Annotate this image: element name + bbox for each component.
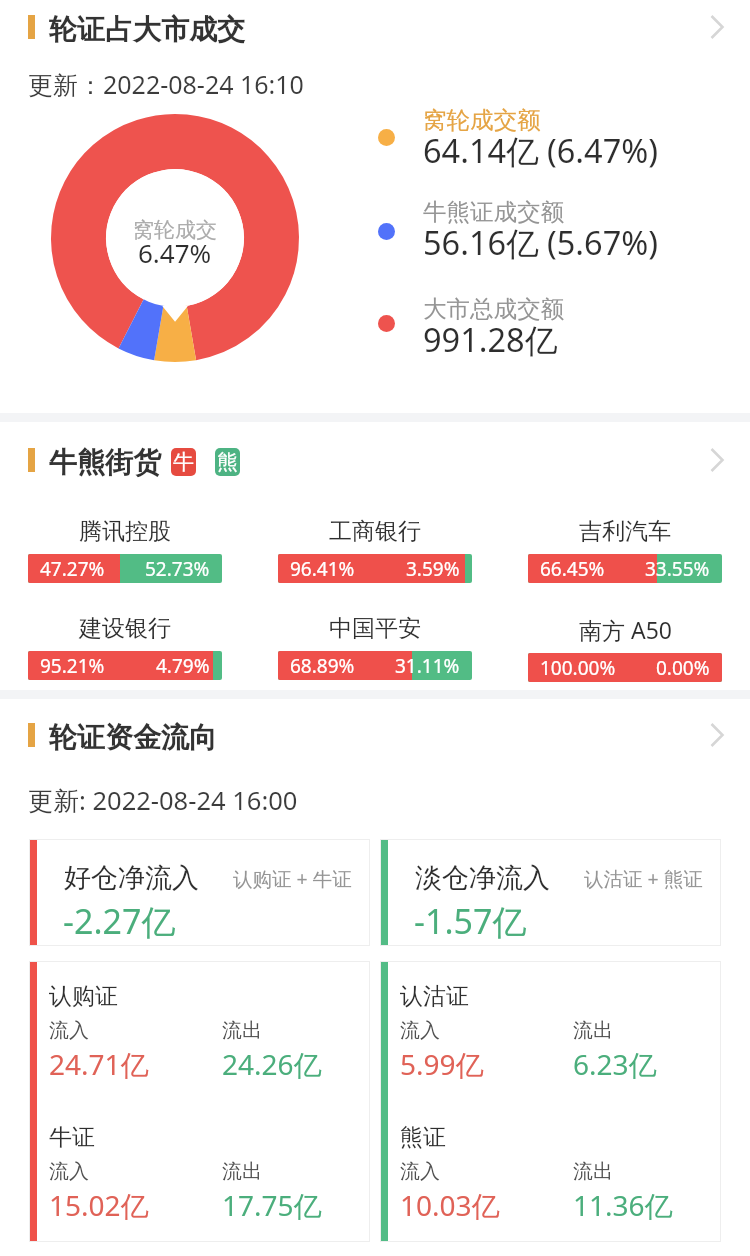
staticText: 窝轮成交 [133,217,217,243]
staticText: 认购证 [49,982,118,1011]
button[interactable]: 牛 [171,448,196,476]
staticText: 熊 [217,449,238,475]
button[interactable]: 查看更多 [693,3,741,51]
staticText: 流出 [573,1159,613,1184]
staticText: 认购证 + 牛证 [233,865,352,892]
staticText: 流出 [573,1018,613,1043]
staticText: 牛熊街货 [49,445,161,480]
button[interactable]: 认沽证 [380,961,721,1242]
staticText: 10.03亿 [400,1186,500,1224]
staticText: 64.14亿 (6.47%) [423,128,659,172]
staticText: 11.36亿 [573,1186,673,1224]
staticText: 大市总成交额 [423,294,564,324]
staticText: 吉利汽车 [579,517,671,546]
staticText: 6.47% [138,235,212,270]
staticText: 15.02亿 [49,1186,149,1224]
other: 牛熊证成交额 [378,223,395,240]
staticText: 流入 [49,1018,89,1043]
staticText: -2.27亿 [63,898,176,944]
staticText: 腾讯控股 [79,517,171,546]
staticText: 流入 [400,1159,440,1184]
staticText: 牛熊证成交额 [423,197,564,227]
staticText: 5.99亿 [400,1045,484,1083]
staticText: 56.16亿 (5.67%) [423,220,659,264]
staticText: 建设银行 [79,614,171,643]
button[interactable]: 查看更多 [693,436,741,484]
staticText: 好仓净流入 [64,861,199,895]
staticText: 24.26亿 [222,1045,322,1083]
staticText: 南方 A50 [579,614,672,645]
staticText: 31.11% [395,653,460,679]
button[interactable]: 认购证 [29,961,370,1242]
staticText: 96.41% [290,556,355,582]
staticText: 流出 [222,1018,262,1043]
staticText: 中国平安 [329,614,421,643]
button[interactable]: 轮证占大市成交 [0,1,750,53]
button[interactable]: 腾讯控股 [28,517,222,583]
other: 窝轮成交额 [378,129,395,146]
staticText: 68.89% [290,653,355,679]
staticText: 66.45% [540,556,605,582]
staticText: 更新：2022-08-24 16:10 [28,67,304,101]
staticText: 0.00% [656,655,710,681]
button[interactable]: 建设银行 [28,614,222,680]
staticText: 轮证资金流向 [49,720,217,755]
staticText: 牛证 [49,1123,95,1152]
staticText: 6.23亿 [573,1045,657,1083]
other: 大市总成交额 [378,315,395,332]
button[interactable]: 轮证资金流向 [0,709,750,761]
staticText: 52.73% [145,556,210,582]
button[interactable]: 牛熊街货 [0,434,750,486]
button[interactable]: 淡仓净流入 [380,839,721,946]
staticText: 991.28亿 [423,317,558,361]
staticText: 更新: 2022-08-24 16:00 [28,783,298,818]
button[interactable]: 南方 A50 [528,614,722,682]
staticText: -1.57亿 [414,898,527,944]
button[interactable]: 好仓净流入 [29,839,370,946]
staticText: 4.79% [156,653,210,679]
staticText: 95.21% [40,653,105,679]
button[interactable]: 查看更多 [693,711,741,759]
staticText: 流入 [49,1159,89,1184]
staticText: 24.71亿 [49,1045,149,1083]
button[interactable]: 熊 [215,448,240,476]
staticText: 熊证 [400,1123,446,1152]
staticText: 流出 [222,1159,262,1184]
button[interactable]: 吉利汽车 [528,517,722,583]
staticText: 3.59% [406,556,460,582]
button[interactable]: 工商银行 [278,517,472,583]
staticText: 47.27% [40,556,105,582]
staticText: 17.75亿 [222,1186,322,1224]
staticText: 认沽证 + 熊证 [584,865,703,892]
staticText: 窝轮成交额 [423,105,541,135]
staticText: 淡仓净流入 [415,861,550,895]
staticText: 33.55% [645,556,710,582]
staticText: 牛 [173,449,194,475]
staticText: 认沽证 [400,982,469,1011]
staticText: 流入 [400,1018,440,1043]
staticText: 轮证占大市成交 [49,12,245,47]
button[interactable]: 中国平安 [278,614,472,680]
staticText: 工商银行 [329,517,421,546]
staticText: 100.00% [540,655,616,681]
